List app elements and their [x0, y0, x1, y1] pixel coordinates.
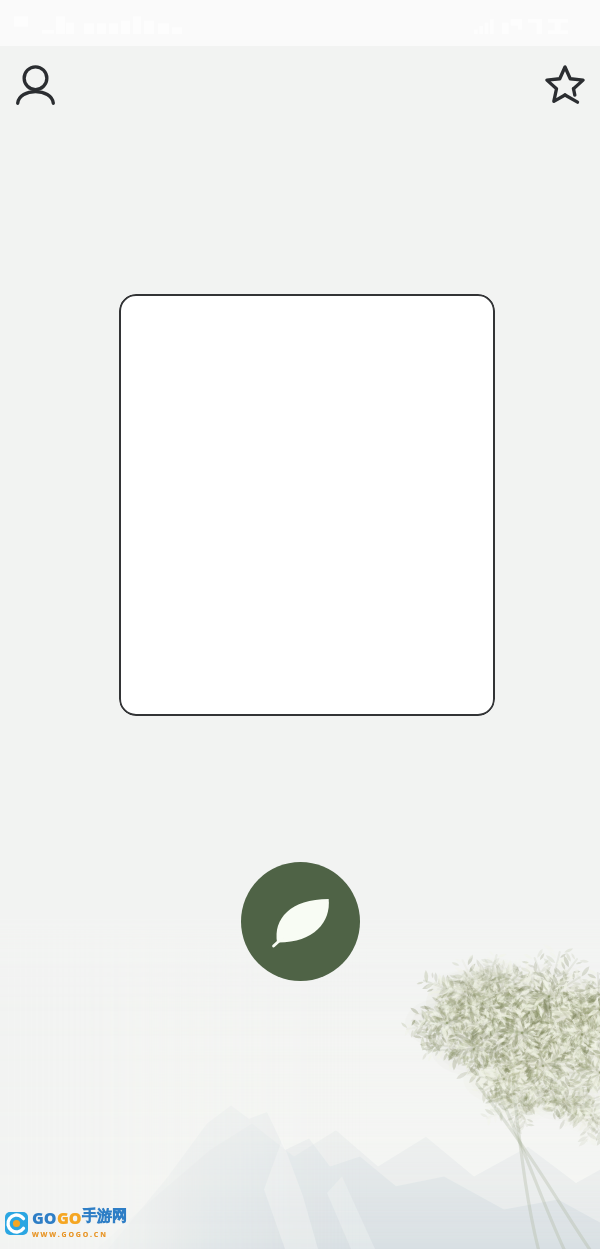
staticText: GO: [32, 1207, 57, 1229]
staticText: W W W . G O G O . C N: [32, 1230, 106, 1240]
staticText: 手游网: [82, 1207, 127, 1226]
button[interactable]: Favorites: [530, 48, 600, 118]
button[interactable]: [119, 294, 495, 716]
button[interactable]: Account: [0, 48, 70, 118]
staticText: GO: [57, 1207, 82, 1229]
button[interactable]: App logo: [241, 862, 360, 981]
